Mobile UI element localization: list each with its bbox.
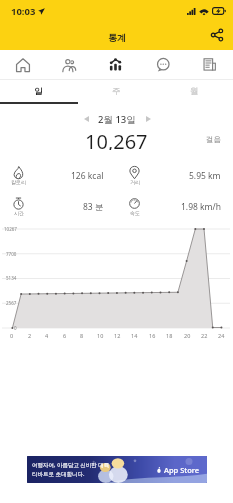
staticText: 2 (28, 332, 32, 339)
button[interactable]: 주 (77, 79, 155, 103)
staticText: 2567 (6, 300, 17, 306)
staticText: 10,267 (85, 128, 148, 150)
staticText: 월 (190, 86, 199, 97)
staticText: 6 (63, 332, 67, 339)
staticText: 10267 (4, 226, 17, 232)
staticText: 7700 (6, 251, 17, 257)
staticText: 83 분 (83, 201, 104, 213)
staticText: 18 (166, 332, 173, 339)
button[interactable]: 일 (0, 79, 77, 103)
staticText: 거리 (130, 179, 140, 185)
staticText: 10 (97, 332, 104, 339)
button[interactable]: 거리 (116, 160, 233, 191)
staticText: 속도 (130, 210, 140, 216)
button[interactable]: Home (0, 50, 46, 79)
staticText: 통계 (108, 32, 126, 43)
button[interactable]: 월 (155, 79, 233, 103)
staticText: 8 (80, 332, 84, 339)
button[interactable]: Next day (140, 111, 156, 127)
staticText: 14 (131, 332, 138, 339)
staticText: 걸음 (206, 135, 221, 144)
button[interactable]: Previous day (78, 111, 94, 127)
staticText: 22 (201, 332, 208, 339)
staticText: App Store (164, 465, 200, 475)
staticText: 5134 (6, 275, 17, 281)
staticText: 12 (114, 332, 121, 339)
button[interactable]: Share (209, 27, 225, 43)
staticText: 일 (34, 86, 43, 97)
staticText: 16 (149, 332, 156, 339)
staticText: 2월 13일 (98, 113, 136, 126)
staticText: 0 (14, 325, 17, 331)
staticText: 칼로리 (11, 179, 26, 185)
staticText: 126 kcal (71, 170, 104, 182)
button[interactable]: 여행자여, 아름답고 신비한 대륙 티바트로 초대합니다. (27, 456, 207, 483)
button[interactable]: 시간 (0, 191, 116, 222)
staticText: 0 (10, 332, 14, 339)
staticText: 5.95 km (189, 170, 221, 182)
staticText: 24 (218, 332, 225, 339)
button[interactable]: Friends (46, 50, 92, 79)
staticText: 4 (45, 332, 49, 339)
button[interactable]: Statistics (92, 50, 139, 79)
button[interactable]: 칼로리 (0, 160, 116, 191)
staticText: 1.98 km/h (181, 201, 221, 213)
staticText: 20 (184, 332, 191, 339)
button[interactable]: 속도 (116, 191, 233, 222)
staticText: 주 (112, 86, 121, 97)
button[interactable]: News (186, 50, 233, 79)
button[interactable]: Chat (139, 50, 186, 79)
staticText: 시간 (14, 210, 24, 216)
staticText: 10:03 (11, 5, 36, 18)
staticText: 여행자여, 아름답고 신비한 대륙 티바트로 초대합니다. (32, 461, 110, 477)
